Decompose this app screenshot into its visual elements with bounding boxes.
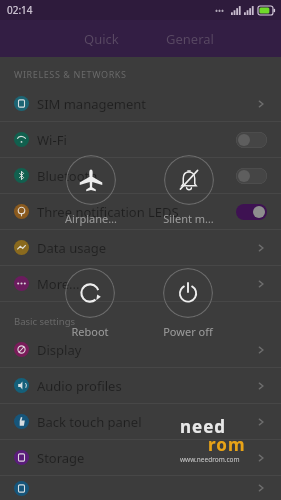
staticText: SIM management xyxy=(37,95,255,113)
staticText: www.needrom.com xyxy=(180,455,240,464)
button[interactable]: Wi-Fi xyxy=(0,122,281,157)
staticText: General xyxy=(166,30,214,48)
button[interactable]: Three notification LEDS xyxy=(0,194,281,229)
button[interactable]: Quick xyxy=(78,26,125,52)
button[interactable]: Audio profiles xyxy=(0,368,281,403)
button[interactable]: Off xyxy=(236,132,267,148)
staticText: Power off xyxy=(163,324,213,339)
button[interactable]: Off xyxy=(236,168,267,184)
staticText: Bluetooth xyxy=(37,167,236,185)
button[interactable]: Power off xyxy=(163,268,213,318)
staticText: Airplane… xyxy=(65,211,117,226)
staticText: Reboot xyxy=(71,324,109,339)
staticText: Display xyxy=(37,341,255,359)
staticText: Audio profiles xyxy=(37,377,255,395)
staticText: need xyxy=(180,415,227,438)
button[interactable]: Back touch panel xyxy=(0,404,281,439)
button[interactable]: Reboot xyxy=(65,268,115,318)
staticText: WIRELESS & NETWORKS xyxy=(14,68,127,80)
button[interactable]: Display xyxy=(0,332,281,367)
button[interactable]: Airplane… xyxy=(66,155,116,205)
button[interactable]: Data usage xyxy=(0,230,281,265)
button[interactable] xyxy=(0,476,281,500)
staticText: rom xyxy=(208,433,246,456)
button[interactable]: Silent m… xyxy=(164,155,214,205)
button[interactable]: On xyxy=(236,204,267,220)
staticText: Data usage xyxy=(37,239,255,257)
button[interactable]: Storage xyxy=(0,440,281,475)
staticText: Wi-Fi xyxy=(37,131,236,149)
staticText: Silent m… xyxy=(163,211,214,226)
button[interactable]: General xyxy=(160,26,220,52)
staticText: Quick xyxy=(84,30,119,48)
button[interactable]: More... xyxy=(0,266,281,301)
button[interactable]: Bluetooth xyxy=(0,158,281,193)
staticText: Three notification LEDS xyxy=(37,203,236,221)
button[interactable]: SIM management xyxy=(0,86,281,121)
staticText: Basic settings xyxy=(14,315,76,328)
staticText: Back touch panel xyxy=(37,413,255,431)
staticText: 02:14 xyxy=(7,3,33,17)
staticText: ••• xyxy=(215,5,225,16)
staticText: More... xyxy=(37,275,255,293)
staticText: Storage xyxy=(37,449,255,467)
